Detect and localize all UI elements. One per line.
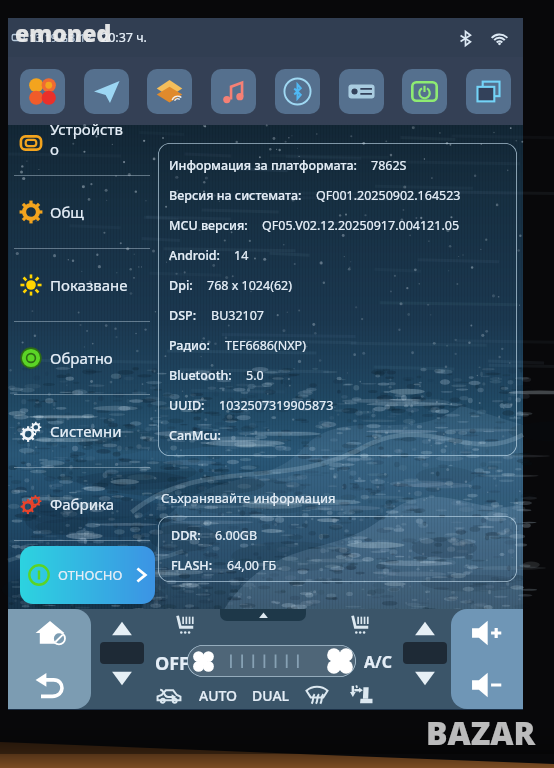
button[interactable]: ОТНОСНО xyxy=(20,546,155,604)
button[interactable]: Radio xyxy=(339,69,384,114)
staticText: Общ xyxy=(50,202,84,222)
button[interactable]: Общ xyxy=(20,181,155,243)
staticText: 14 xyxy=(234,247,249,264)
staticText: ОТНОСНО xyxy=(58,566,123,584)
button[interactable]: Right seat heater xyxy=(346,611,372,637)
staticText: QF001.20250902.164523 xyxy=(316,187,461,204)
button[interactable]: Обратно xyxy=(20,327,155,389)
button[interactable]: Air recirculation xyxy=(155,681,183,709)
button[interactable]: Music xyxy=(211,69,256,114)
staticText: CanMcu: xyxy=(169,427,221,444)
button[interactable]: Home xyxy=(29,612,71,654)
staticText: Информация за платформата: xyxy=(169,157,357,174)
button[interactable]: Bluetooth xyxy=(455,28,475,48)
staticText: Системни xyxy=(50,421,122,441)
button[interactable]: Устройств о xyxy=(8,125,158,175)
button[interactable]: Left temperature up xyxy=(100,617,144,639)
button[interactable]: Right temperature up xyxy=(403,617,447,639)
button[interactable]: Apps xyxy=(20,69,65,114)
button[interactable]: Recent apps xyxy=(466,69,511,114)
staticText: 7862S xyxy=(371,157,407,174)
staticText: UUID: xyxy=(169,397,205,414)
staticText: Bluetooth: xyxy=(169,367,232,384)
staticText: DDR: xyxy=(171,527,201,544)
staticText: emoned xyxy=(15,17,112,48)
button[interactable]: Navigation xyxy=(84,69,129,114)
staticText: 6.00GB xyxy=(215,527,258,544)
staticText: 768 x 1024(62) xyxy=(207,277,292,294)
button[interactable]: Back xyxy=(29,664,71,706)
button[interactable]: Системни xyxy=(20,400,155,462)
button[interactable]: DUAL xyxy=(252,686,290,705)
button[interactable]: Right temperature down xyxy=(403,667,447,689)
staticText: Версия на системата: xyxy=(169,187,302,204)
button[interactable]: Volume down xyxy=(465,663,509,707)
staticText: Съхранявайте информация xyxy=(161,489,336,507)
button[interactable]: Power xyxy=(402,69,447,114)
button[interactable]: Left temperature down xyxy=(100,667,144,689)
button[interactable]: Wi-Fi xyxy=(489,28,509,48)
button[interactable]: Rear defrost xyxy=(304,682,330,708)
button[interactable]: Fan speed xyxy=(187,645,356,677)
staticText: TEF6686(NXP) xyxy=(225,337,306,354)
button[interactable]: Expand climate panel xyxy=(220,609,306,621)
staticText: FLASH: xyxy=(171,557,213,574)
button[interactable]: Front defrost xyxy=(348,682,374,708)
button[interactable]: OFF xyxy=(155,651,190,676)
staticText: 64,00 ГБ xyxy=(227,557,277,574)
staticText: BAZAR xyxy=(426,711,536,755)
button[interactable]: Maps xyxy=(147,69,192,114)
staticText: Android: xyxy=(169,247,220,264)
staticText: BU32107 xyxy=(211,307,265,324)
staticText: QF05.V02.12.20250917.004121.05 xyxy=(262,217,460,234)
staticText: 13,19 GB/12 xyxy=(29,30,92,45)
staticText: Dpi: xyxy=(169,277,193,294)
button[interactable]: Показване xyxy=(20,254,155,316)
button[interactable]: Volume up xyxy=(465,611,509,655)
button[interactable]: Фабрика xyxy=(20,473,155,535)
staticText: 1032507319905873 xyxy=(219,397,334,414)
staticText: Фабрика xyxy=(50,494,114,514)
staticText: DSP: xyxy=(169,307,197,324)
staticText: Показване xyxy=(50,275,128,295)
staticText: Обратно xyxy=(50,348,113,368)
staticText: Устройств о xyxy=(50,119,123,159)
button[interactable]: Left seat heater xyxy=(171,611,197,637)
button[interactable]: Bluetooth audio xyxy=(275,69,320,114)
button[interactable]: AUTO xyxy=(199,686,238,705)
staticText: 20:37 ч. xyxy=(101,29,147,46)
staticText: 5.0 xyxy=(246,367,264,384)
staticText: Радио: xyxy=(169,337,211,354)
staticText: MCU версия: xyxy=(169,217,248,234)
button[interactable]: A/C xyxy=(364,651,392,673)
